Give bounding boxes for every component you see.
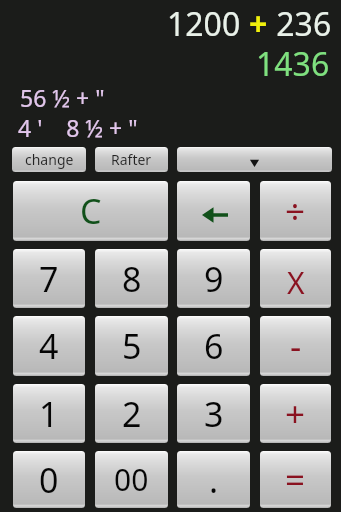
button[interactable]: 3 bbox=[177, 384, 250, 443]
button[interactable]: change bbox=[12, 147, 86, 172]
staticText: 4 bbox=[39, 323, 59, 369]
staticText: 0 bbox=[39, 457, 59, 503]
staticText: 1200 bbox=[167, 2, 249, 46]
staticText: X bbox=[287, 262, 305, 303]
staticText: 00 bbox=[114, 459, 149, 500]
staticText: + bbox=[285, 390, 306, 438]
button[interactable]: - bbox=[260, 316, 331, 376]
button[interactable]: Backspace bbox=[177, 181, 250, 241]
button[interactable]: 8 bbox=[95, 249, 168, 308]
button[interactable]: X bbox=[260, 249, 331, 308]
staticText: 5 bbox=[122, 323, 142, 369]
staticText: 8 bbox=[122, 256, 142, 302]
staticText: 1 bbox=[39, 391, 59, 437]
staticText: 1436 bbox=[256, 42, 330, 86]
button[interactable]: 9 bbox=[177, 249, 250, 308]
button[interactable]: + bbox=[260, 384, 331, 443]
staticText: 236 bbox=[268, 2, 332, 46]
staticText: 6 bbox=[204, 323, 224, 369]
button[interactable]: 5 bbox=[95, 316, 168, 376]
staticText: 56 ½ + " bbox=[20, 82, 105, 113]
button[interactable]: 2 bbox=[95, 384, 168, 443]
button[interactable]: Select unit bbox=[177, 147, 332, 172]
staticText: Rafter bbox=[111, 150, 152, 169]
staticText: ÷ bbox=[285, 187, 306, 235]
staticText: . bbox=[209, 457, 219, 503]
button[interactable]: ÷ bbox=[260, 181, 331, 241]
staticText: change bbox=[25, 150, 74, 169]
staticText: = bbox=[285, 456, 306, 504]
staticText: - bbox=[290, 322, 302, 370]
staticText: 7 bbox=[39, 256, 59, 302]
button[interactable]: 1 bbox=[13, 384, 85, 443]
button[interactable]: 6 bbox=[177, 316, 250, 376]
staticText: 4 ' 8 ½ + " bbox=[18, 112, 138, 143]
staticText: 2 bbox=[122, 391, 142, 437]
button[interactable]: Rafter bbox=[95, 147, 168, 172]
staticText: + bbox=[249, 2, 268, 46]
staticText: 9 bbox=[204, 256, 224, 302]
staticText: C bbox=[80, 188, 102, 234]
button[interactable]: . bbox=[177, 451, 250, 508]
button[interactable]: 00 bbox=[95, 451, 168, 508]
button[interactable]: = bbox=[260, 451, 331, 508]
button[interactable]: 7 bbox=[13, 249, 85, 308]
button[interactable]: 4 bbox=[13, 316, 85, 376]
button[interactable]: C bbox=[13, 181, 168, 241]
button[interactable]: 0 bbox=[13, 451, 85, 508]
staticText: 3 bbox=[204, 391, 224, 437]
